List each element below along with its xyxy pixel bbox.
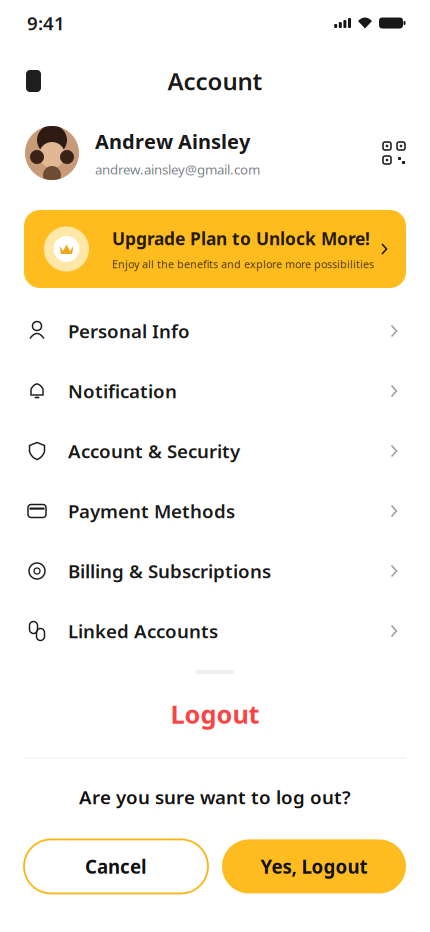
staticText: Account & Security <box>68 439 240 463</box>
staticText: Andrew Ainsley <box>95 128 250 154</box>
button[interactable]: Back <box>26 70 41 92</box>
button[interactable]: Personal Info <box>0 301 430 361</box>
button[interactable]: Notification <box>0 361 430 421</box>
staticText: Notification <box>68 379 177 403</box>
button[interactable]: Payment Methods <box>0 481 430 541</box>
staticText: Yes, Logout <box>260 854 367 879</box>
staticText: Cancel <box>85 854 147 879</box>
staticText: Account <box>167 65 262 97</box>
staticText: Billing & Subscriptions <box>68 559 271 583</box>
staticText: Are you sure want to log out? <box>79 785 351 809</box>
button[interactable]: Linked Accounts <box>0 601 430 661</box>
staticText: Payment Methods <box>68 499 235 523</box>
button[interactable]: Yes, Logout <box>222 839 406 893</box>
staticText: 9:41 <box>27 11 65 35</box>
button[interactable]: Cancel <box>24 839 208 893</box>
staticText: Logout <box>170 697 259 731</box>
staticText: Enjoy all the benefits and explore more … <box>112 257 374 271</box>
button[interactable]: Account & Security <box>0 421 430 481</box>
staticText: andrew.ainsley@gmail.com <box>95 160 260 178</box>
button[interactable]: Billing & Subscriptions <box>0 541 430 601</box>
button[interactable]: Upgrade Plan to Unlock More! <box>24 210 406 288</box>
staticText: Upgrade Plan to Unlock More! <box>112 227 370 250</box>
button[interactable]: Scan QR code <box>383 142 405 164</box>
staticText: Linked Accounts <box>68 619 218 643</box>
staticText: Personal Info <box>68 319 190 343</box>
